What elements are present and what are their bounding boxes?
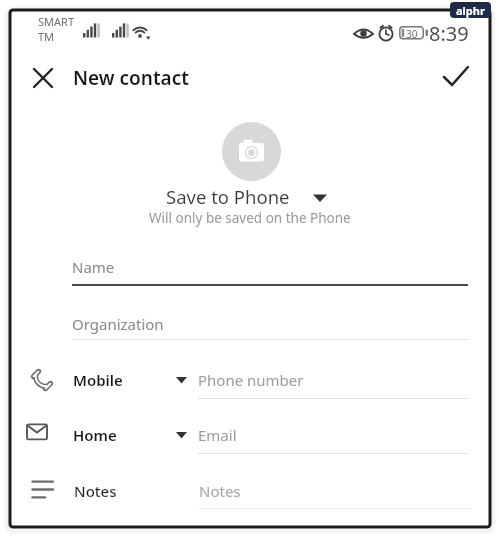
staticText: Notes: [199, 481, 241, 501]
staticText: alphr: [456, 3, 485, 18]
staticText: Save to Phone: [166, 184, 290, 209]
button[interactable]: Name: [72, 252, 468, 286]
staticText: 30: [406, 27, 418, 41]
button[interactable]: Mobile: [72, 364, 194, 394]
staticText: Will only be saved on the Phone: [149, 209, 351, 227]
staticText: Email: [198, 425, 237, 445]
button[interactable]: [222, 122, 281, 181]
staticText: Phone number: [198, 370, 304, 390]
staticText: Mobile: [73, 370, 123, 390]
button[interactable]: [24, 59, 62, 97]
staticText: 8:39: [429, 20, 469, 47]
button[interactable]: Home: [72, 419, 194, 449]
button[interactable]: Organization: [72, 309, 468, 340]
button[interactable]: Save to Phone: [158, 180, 336, 208]
staticText: Name: [72, 257, 115, 277]
staticText: Organization: [72, 314, 164, 334]
staticText: SMART TM: [38, 14, 75, 44]
staticText: Notes: [74, 481, 117, 501]
button[interactable]: Notes: [72, 475, 194, 505]
button[interactable]: Notes: [198, 475, 468, 510]
staticText: Home: [73, 425, 117, 445]
button[interactable]: Phone number: [198, 364, 468, 399]
staticText: New contact: [73, 65, 189, 91]
button[interactable]: Email: [198, 419, 468, 454]
button[interactable]: [436, 58, 476, 96]
